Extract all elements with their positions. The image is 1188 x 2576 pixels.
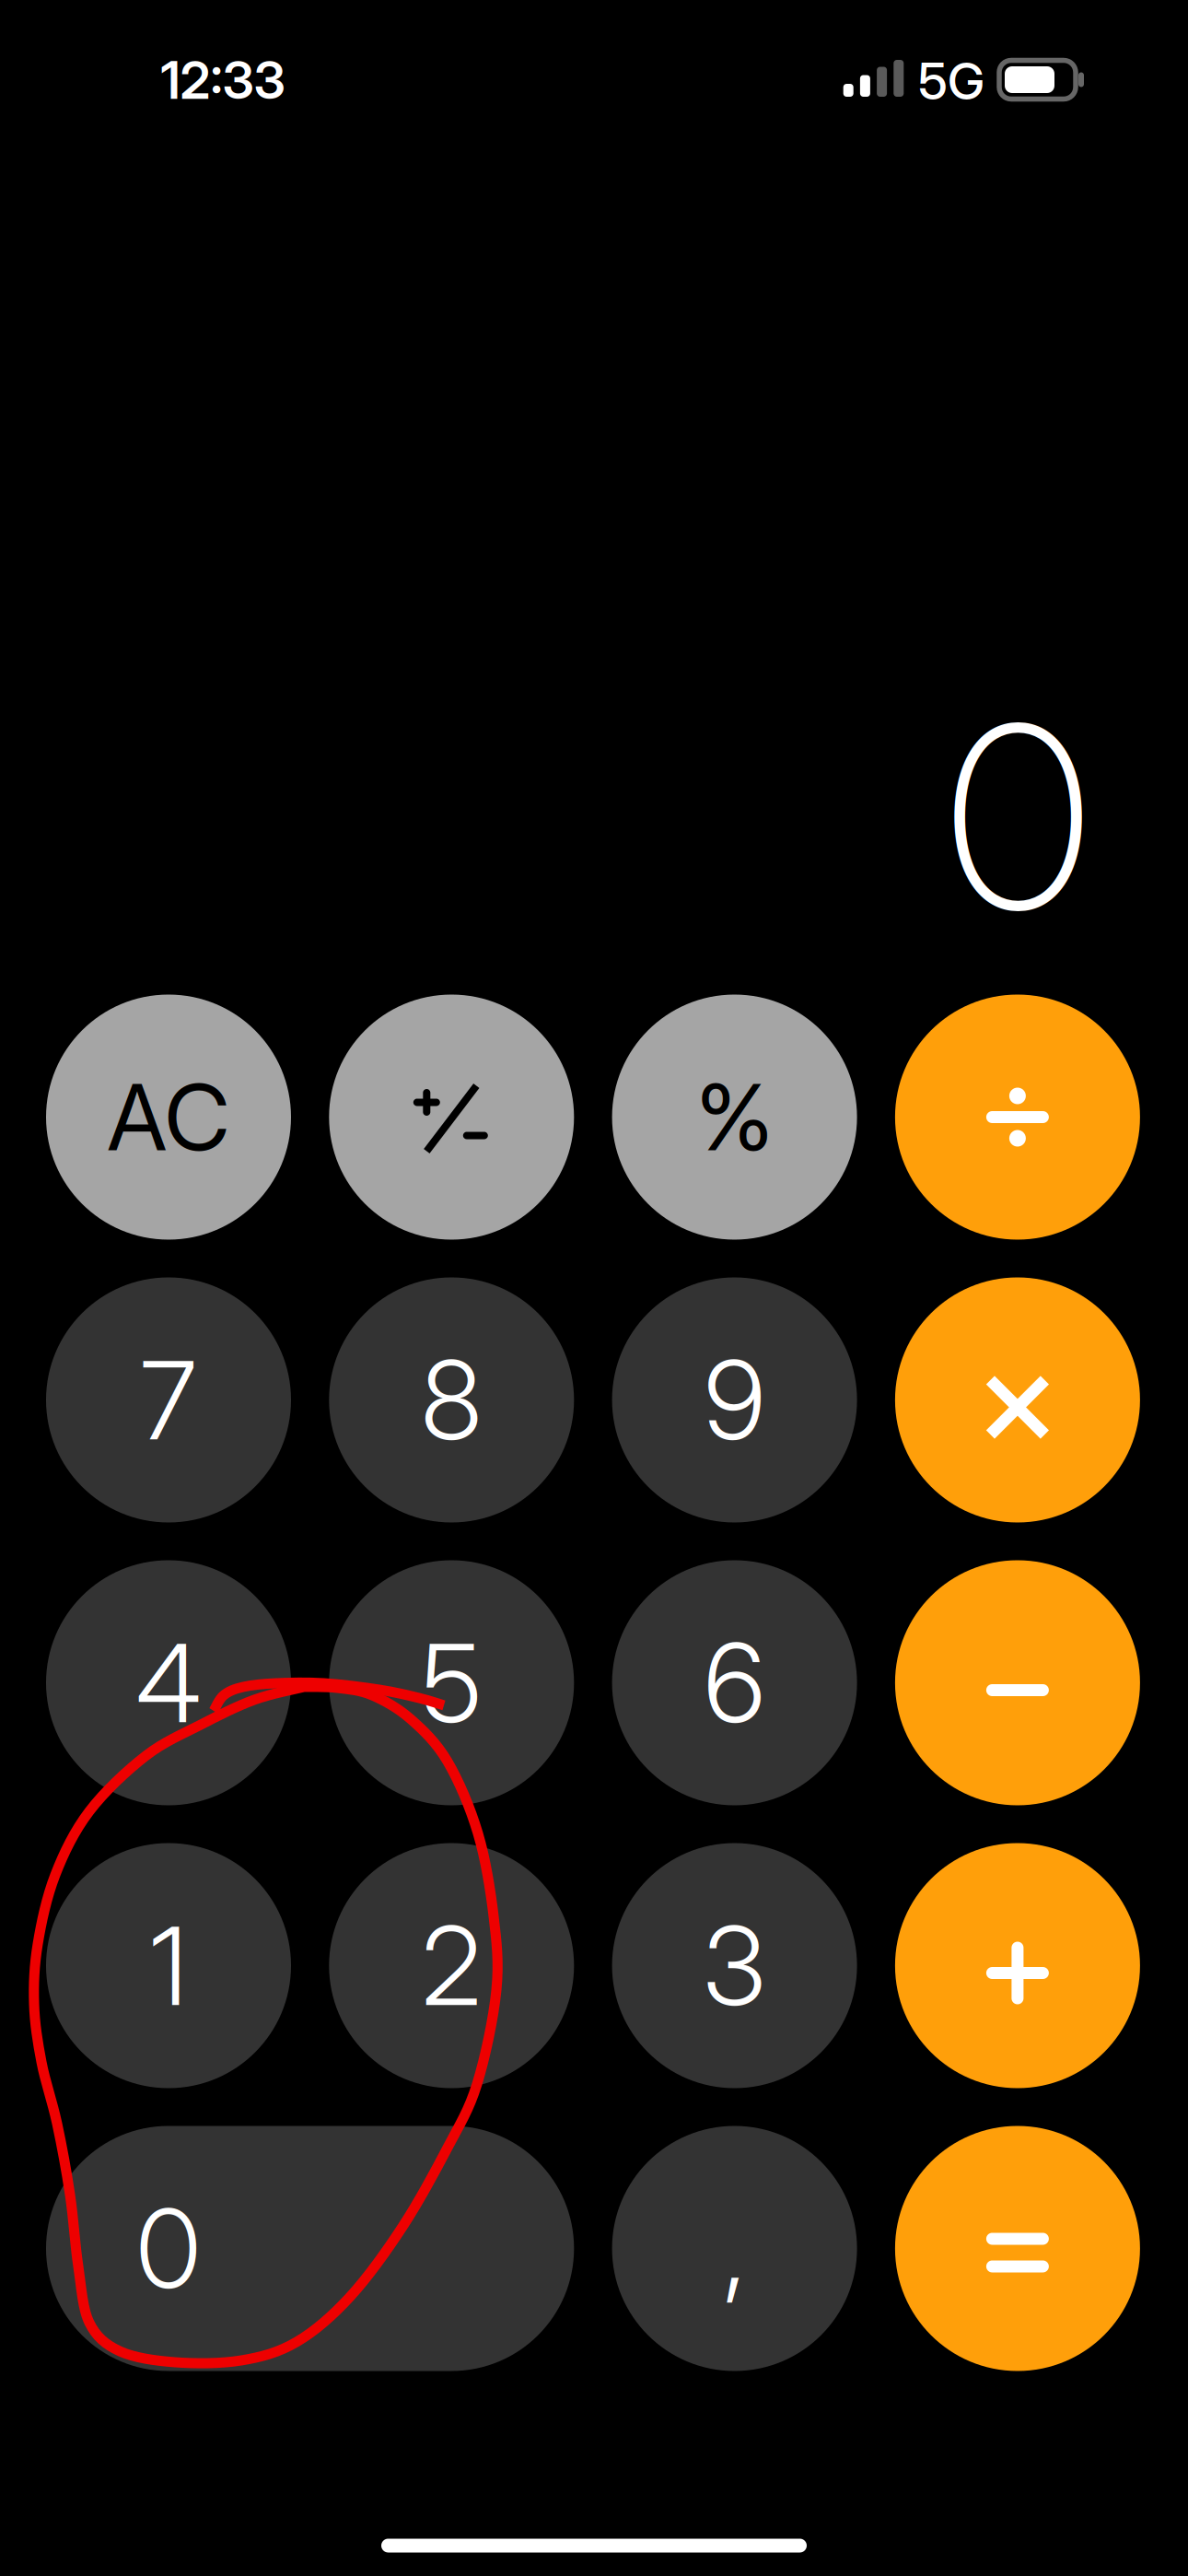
button[interactable]: 6 [612, 1560, 857, 1805]
staticText: AC [107, 1062, 230, 1172]
staticText: 5G [918, 51, 984, 111]
button[interactable]: 7 [46, 1277, 291, 1522]
staticText: 4 [136, 1617, 201, 1748]
staticText: 0 [945, 663, 1091, 969]
button[interactable]: Plus [895, 1843, 1140, 2088]
button[interactable]: 9 [612, 1277, 857, 1522]
button[interactable]: Equals [895, 2126, 1140, 2371]
staticText: 9 [704, 1335, 765, 1465]
staticText: 5 [422, 1617, 481, 1748]
button[interactable]: All Clear [46, 995, 291, 1240]
button[interactable]: 5 [329, 1560, 574, 1805]
button[interactable]: Minus [895, 1560, 1140, 1805]
button[interactable]: 4 [46, 1560, 291, 1805]
staticText: 12:33 [161, 49, 285, 111]
staticText: 2 [422, 1900, 481, 2031]
staticText: 0 [136, 2183, 201, 2314]
button[interactable]: 2 [329, 1843, 574, 2088]
staticText: , [723, 2183, 746, 2314]
button[interactable]: Percent [612, 995, 857, 1240]
button[interactable]: Decimal separator [612, 2126, 857, 2371]
staticText: 8 [421, 1335, 482, 1465]
button[interactable]: 1 [46, 1843, 291, 2088]
button[interactable]: 3 [612, 1843, 857, 2088]
staticText: 7 [140, 1335, 197, 1465]
staticText: 6 [704, 1617, 765, 1748]
staticText: 3 [703, 1900, 766, 2031]
staticText: % [696, 1062, 773, 1172]
button[interactable]: Divide [895, 995, 1140, 1240]
staticText: 1 [150, 1900, 187, 2031]
button[interactable]: 8 [329, 1277, 574, 1522]
button[interactable]: Plus Minus [329, 995, 574, 1240]
button[interactable]: 0 [46, 2126, 574, 2371]
button[interactable]: Multiply [895, 1277, 1140, 1522]
